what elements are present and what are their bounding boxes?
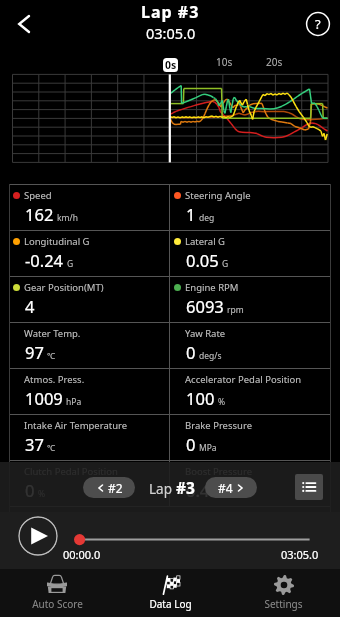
button[interactable]: Speed	[9, 185, 169, 230]
button[interactable]: Auto Score	[0, 569, 114, 617]
button[interactable]: Help	[301, 7, 335, 41]
staticText: km/h	[57, 212, 78, 224]
button[interactable]: Play	[18, 516, 58, 556]
staticText: 0.4	[186, 479, 210, 501]
staticText: Boost Pressure	[185, 465, 253, 478]
button[interactable]: Water Temp.	[9, 323, 169, 368]
staticText: 100	[186, 387, 215, 409]
staticText: Water Temp.	[24, 327, 81, 340]
button[interactable]: List	[295, 474, 323, 500]
staticText: 20s	[266, 55, 283, 69]
staticText: G	[222, 258, 229, 270]
button[interactable]: Steering Angle	[170, 185, 331, 230]
staticText: Longitudinal G	[24, 235, 90, 248]
button[interactable]: Engine RPM	[170, 277, 331, 322]
staticText: Steering Angle	[185, 189, 251, 202]
staticText: Accelerator Pedal Position	[185, 373, 302, 386]
staticText: 1	[186, 203, 196, 225]
staticText: 1009	[25, 387, 63, 409]
button[interactable]: Data Log	[114, 569, 227, 617]
staticText: 0s	[165, 58, 177, 72]
button[interactable]: Clutch Pedal Position	[9, 461, 169, 506]
staticText: #3	[176, 477, 195, 498]
staticText: ℃	[47, 350, 56, 362]
staticText: ?	[315, 15, 321, 33]
button[interactable]: #2	[83, 477, 135, 498]
staticText: rpm	[227, 304, 244, 316]
staticText: #4	[218, 480, 233, 496]
staticText: 37	[25, 433, 44, 455]
button[interactable]: Accelerator Pedal Position	[170, 369, 331, 414]
staticText: %	[218, 396, 226, 408]
button[interactable]: Yaw Rate	[170, 323, 331, 368]
staticText: -0.24	[25, 249, 64, 271]
staticText: Gear Position(MT)	[24, 281, 104, 294]
staticText: 0	[186, 433, 196, 455]
staticText: deg/s	[199, 350, 222, 362]
staticText: 4	[25, 295, 35, 317]
button[interactable]: Back	[4, 4, 44, 44]
staticText: 0	[25, 479, 35, 501]
staticText: Lateral G	[185, 235, 225, 248]
staticText: 6093	[186, 295, 224, 317]
staticText: deg	[199, 212, 215, 224]
staticText: #2	[108, 480, 123, 496]
button[interactable]: Settings	[227, 569, 340, 617]
staticText: 0	[186, 341, 196, 363]
button[interactable]: Lateral G	[170, 231, 331, 276]
staticText: Auto Score	[32, 597, 83, 611]
button[interactable]: Brake Pressure	[170, 415, 331, 460]
staticText: 0.05	[186, 249, 219, 271]
staticText: 00:00.0	[63, 547, 101, 562]
staticText: Lap #3	[141, 1, 200, 23]
button[interactable]: #4	[205, 477, 257, 498]
staticText: Engine RPM	[185, 281, 239, 294]
staticText: Clutch Pedal Position	[24, 465, 118, 478]
staticText: 03:05.0	[146, 23, 196, 43]
button[interactable]: Atmos. Press.	[9, 369, 169, 414]
staticText: Data Log	[149, 597, 192, 611]
staticText: hPa	[66, 396, 82, 408]
staticText: Lap	[149, 480, 172, 498]
staticText: ℃	[47, 442, 56, 454]
staticText: Intake Air Temperature	[24, 419, 128, 432]
staticText: %	[38, 488, 46, 500]
staticText: 97	[25, 341, 44, 363]
button[interactable]: Boost Pressure	[170, 461, 331, 506]
staticText: Brake Pressure	[185, 419, 253, 432]
staticText: 03:05.0	[281, 547, 319, 562]
staticText: 162	[25, 203, 54, 225]
button[interactable]: Intake Air Temperature	[9, 415, 169, 460]
staticText: Settings	[264, 597, 303, 611]
staticText: Atmos. Press.	[24, 373, 85, 386]
staticText: 10s	[216, 55, 233, 69]
staticText: MPa	[199, 442, 217, 454]
staticText: kPa	[213, 488, 228, 500]
button[interactable]: Longitudinal G	[9, 231, 169, 276]
button[interactable]: Gear Position(MT)	[9, 277, 169, 322]
staticText: Yaw Rate	[185, 327, 226, 340]
staticText: G	[67, 258, 74, 270]
staticText: Speed	[24, 189, 52, 202]
